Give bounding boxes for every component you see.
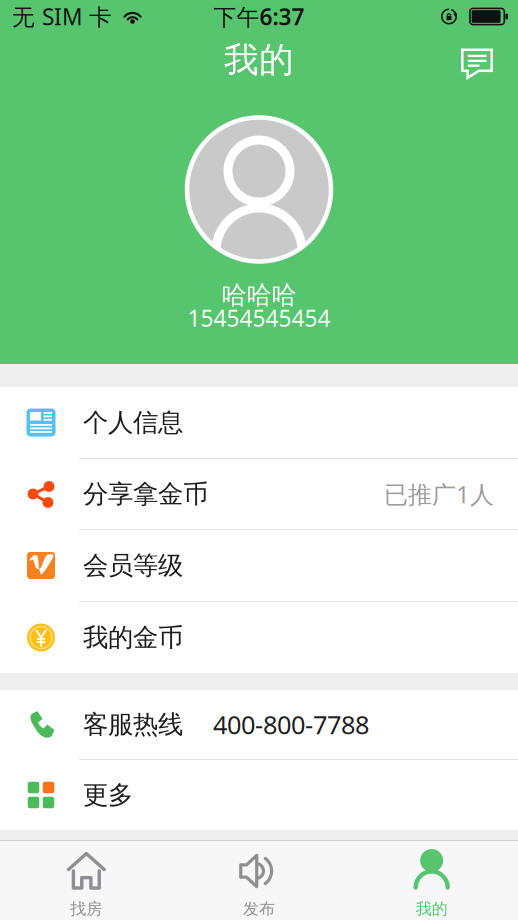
- button[interactable]: 发布: [173, 841, 345, 920]
- staticText: 客服热线: [83, 709, 183, 740]
- button[interactable]: 找房: [0, 841, 173, 920]
- staticText: 我的: [416, 899, 448, 919]
- staticText: 个人信息: [83, 407, 183, 438]
- button[interactable]: 更多: [0, 760, 518, 830]
- staticText: 下午6:37: [213, 1, 304, 31]
- staticText: 我的金币: [83, 622, 183, 653]
- staticText: 找房: [70, 899, 102, 919]
- staticText: 无 SIM 卡: [12, 1, 112, 31]
- button[interactable]: 会员等级: [0, 530, 518, 602]
- button[interactable]: 我的: [345, 841, 518, 920]
- staticText: 分享拿金币: [83, 478, 208, 509]
- button[interactable]: 消息: [451, 35, 501, 84]
- staticText: 400-800-7788: [213, 708, 369, 741]
- staticText: 我的: [224, 39, 294, 81]
- staticText: 会员等级: [83, 550, 183, 581]
- button[interactable]: 客服热线: [0, 690, 518, 760]
- staticText: 更多: [83, 779, 133, 810]
- button[interactable]: 我的金币: [0, 602, 518, 673]
- staticText: 哈哈哈: [221, 279, 296, 310]
- staticText: 发布: [243, 899, 275, 919]
- staticText: 已推广1人: [384, 478, 494, 510]
- staticText: 15454545454: [187, 303, 330, 333]
- button[interactable]: 个人信息: [0, 387, 518, 459]
- button[interactable]: 分享拿金币: [0, 459, 518, 530]
